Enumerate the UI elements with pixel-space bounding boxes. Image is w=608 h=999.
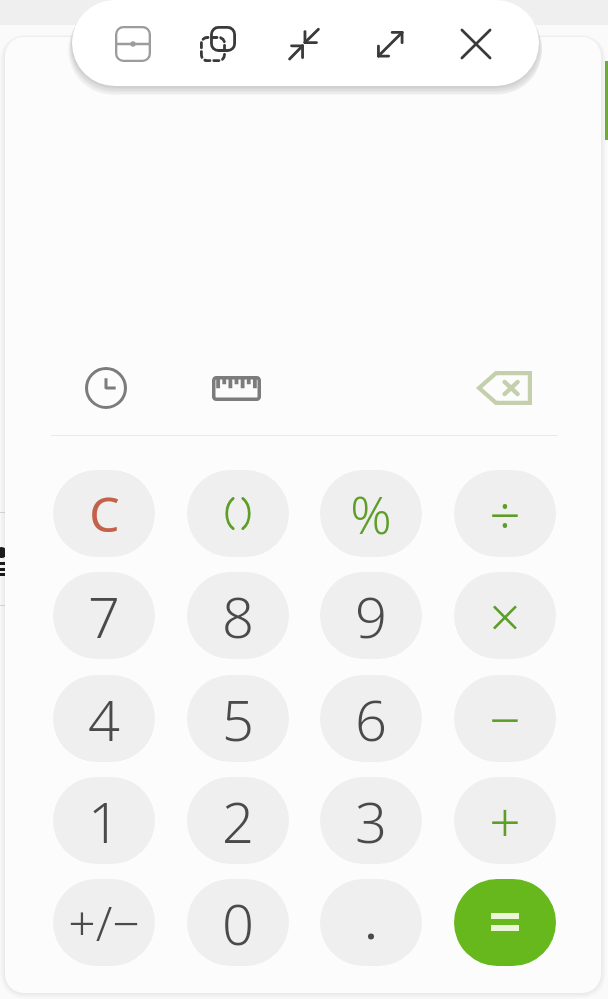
staticText: 9: [355, 578, 387, 654]
button[interactable]: 6: [320, 675, 422, 762]
staticText: 5: [222, 681, 254, 757]
button[interactable]: Close: [447, 15, 505, 73]
button[interactable]: [187, 470, 289, 557]
staticText: 8: [222, 578, 254, 654]
staticText: +: [489, 783, 521, 858]
staticText: −: [489, 681, 521, 756]
button[interactable]: 1: [53, 777, 155, 864]
staticText: 3: [355, 783, 387, 859]
button[interactable]: ×: [454, 572, 556, 659]
staticText: ×: [489, 578, 521, 653]
staticText: C: [89, 481, 120, 546]
staticText: 2: [222, 783, 254, 859]
button[interactable]: 3: [320, 777, 422, 864]
button[interactable]: %: [320, 470, 422, 557]
button[interactable]: History: [74, 356, 138, 420]
button[interactable]: +: [454, 777, 556, 864]
button[interactable]: Expand: [361, 15, 419, 73]
staticText: 1: [88, 783, 120, 859]
button[interactable]: Picture in picture: [189, 15, 247, 73]
button[interactable]: 4: [53, 675, 155, 762]
staticText: 4: [88, 681, 120, 757]
staticText: 7: [88, 578, 120, 654]
button[interactable]: −: [454, 675, 556, 762]
button[interactable]: [320, 879, 422, 966]
button[interactable]: ÷: [454, 470, 556, 557]
staticText: %: [350, 479, 392, 548]
button[interactable]: 9: [320, 572, 422, 659]
staticText: 0: [222, 885, 254, 961]
staticText: +/−: [68, 890, 140, 955]
button[interactable]: 2: [187, 777, 289, 864]
button[interactable]: Unit converter: [204, 356, 268, 420]
button[interactable]: 0: [187, 879, 289, 966]
button[interactable]: Collapse: [275, 15, 333, 73]
button[interactable]: Split screen: [104, 15, 162, 73]
button[interactable]: 8: [187, 572, 289, 659]
staticText: 6: [355, 681, 387, 757]
button[interactable]: 7: [53, 572, 155, 659]
button[interactable]: Backspace: [472, 356, 536, 420]
staticText: ÷: [489, 476, 521, 551]
button[interactable]: 5: [187, 675, 289, 762]
button[interactable]: [454, 879, 556, 966]
button[interactable]: C: [53, 470, 155, 557]
button[interactable]: +/−: [53, 879, 155, 966]
